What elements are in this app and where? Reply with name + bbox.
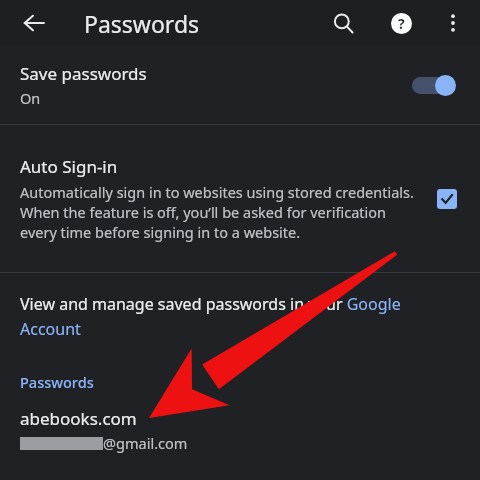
staticText: Auto Sign-in — [20, 155, 118, 178]
staticText: On — [20, 88, 41, 108]
button[interactable]: Help — [380, 2, 422, 44]
button[interactable]: Save passwords — [0, 46, 480, 124]
button[interactable]: Back — [12, 1, 56, 45]
staticText: View and manage saved passwords in your … — [20, 293, 462, 339]
button[interactable]: abebooks.com — [0, 401, 480, 461]
staticText: abebooks.com — [20, 407, 137, 430]
button[interactable]: Auto Sign-in — [0, 125, 480, 272]
staticText: ? — [398, 14, 405, 33]
staticText: Passwords — [20, 372, 94, 392]
staticText: Save passwords — [20, 62, 147, 85]
button[interactable]: View and manage saved passwords in your … — [0, 273, 480, 363]
button[interactable]: Search — [322, 2, 364, 44]
button[interactable]: More options — [432, 2, 474, 44]
staticText: Passwords — [84, 8, 200, 39]
staticText: @gmail.com — [103, 433, 188, 453]
staticText: Automatically sign in to websites using … — [20, 182, 418, 242]
